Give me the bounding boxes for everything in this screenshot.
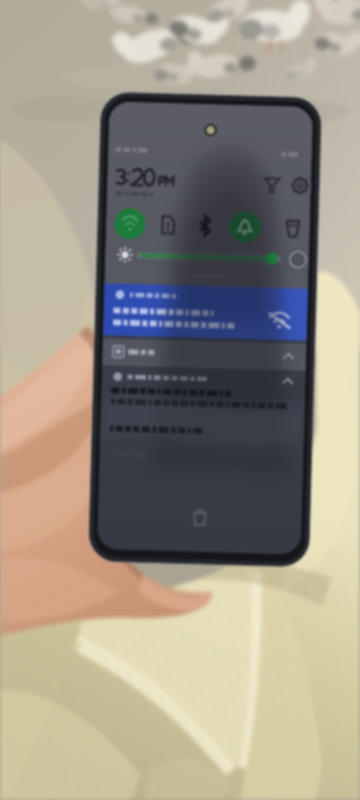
button[interactable]: Photograph of a phone held in a hand [0, 0, 360, 800]
